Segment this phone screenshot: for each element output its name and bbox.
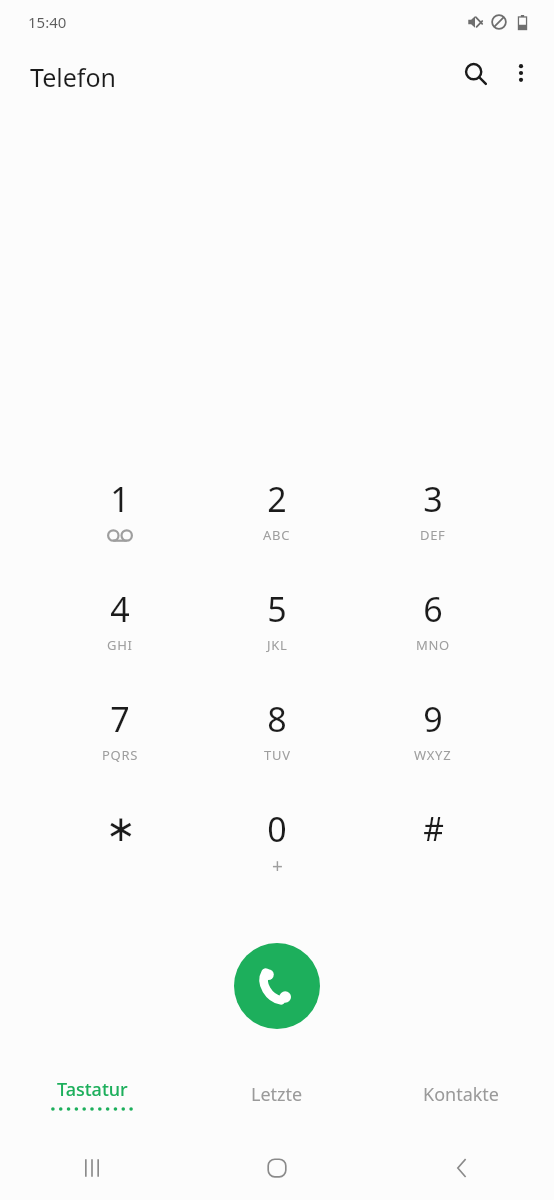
staticText: 4 [110,586,130,632]
staticText: 3 [423,476,443,522]
staticText: Telefon [30,60,116,94]
staticText: 6 [423,586,443,632]
button[interactable]: 8 [218,693,336,797]
button[interactable]: Zurück [369,1136,554,1200]
button[interactable]: Letzte Apps [0,1136,184,1200]
button[interactable]: 3 [374,473,492,577]
button[interactable]: # [374,803,492,907]
button[interactable]: 9 [374,693,492,797]
button[interactable]: 6 [374,583,492,687]
button[interactable]: Tastatur [0,1058,184,1130]
button[interactable]: 2 [218,473,336,577]
button[interactable]: ∗ [61,803,179,907]
button[interactable]: 7 [61,693,179,797]
button[interactable]: 1 [61,473,179,577]
staticText: GHI [107,636,133,654]
staticText: TUV [264,746,291,764]
staticText: 1 [110,476,130,522]
staticText: 15:40 [28,12,67,32]
button[interactable]: 5 [218,583,336,687]
staticText: # [423,807,444,851]
staticText: Tastatur [57,1077,128,1102]
button[interactable]: Letzte [184,1058,369,1130]
staticText: JKL [267,636,288,654]
button[interactable]: 4 [61,583,179,687]
staticText: Letzte [251,1082,303,1107]
button[interactable]: Weitere Optionen [498,50,544,96]
staticText: 8 [267,696,287,742]
staticText: 2 [267,476,287,522]
staticText: 0 [267,806,287,852]
staticText: WXYZ [414,746,452,764]
staticText: PQRS [102,746,139,764]
button[interactable]: 0 [218,803,336,907]
staticText: 5 [267,586,287,632]
staticText: DEF [420,526,446,544]
button[interactable]: Startbildschirm [184,1136,369,1200]
button[interactable]: Anrufen [234,943,320,1029]
staticText: MNO [416,636,450,654]
staticText: ABC [263,526,291,544]
staticText: 9 [423,696,443,742]
staticText: 7 [110,696,130,742]
staticText: + [272,853,283,877]
staticText: Kontakte [423,1082,500,1107]
button[interactable]: Suchen [452,50,498,96]
staticText: ∗ [105,808,136,850]
button[interactable]: Kontakte [369,1058,554,1130]
